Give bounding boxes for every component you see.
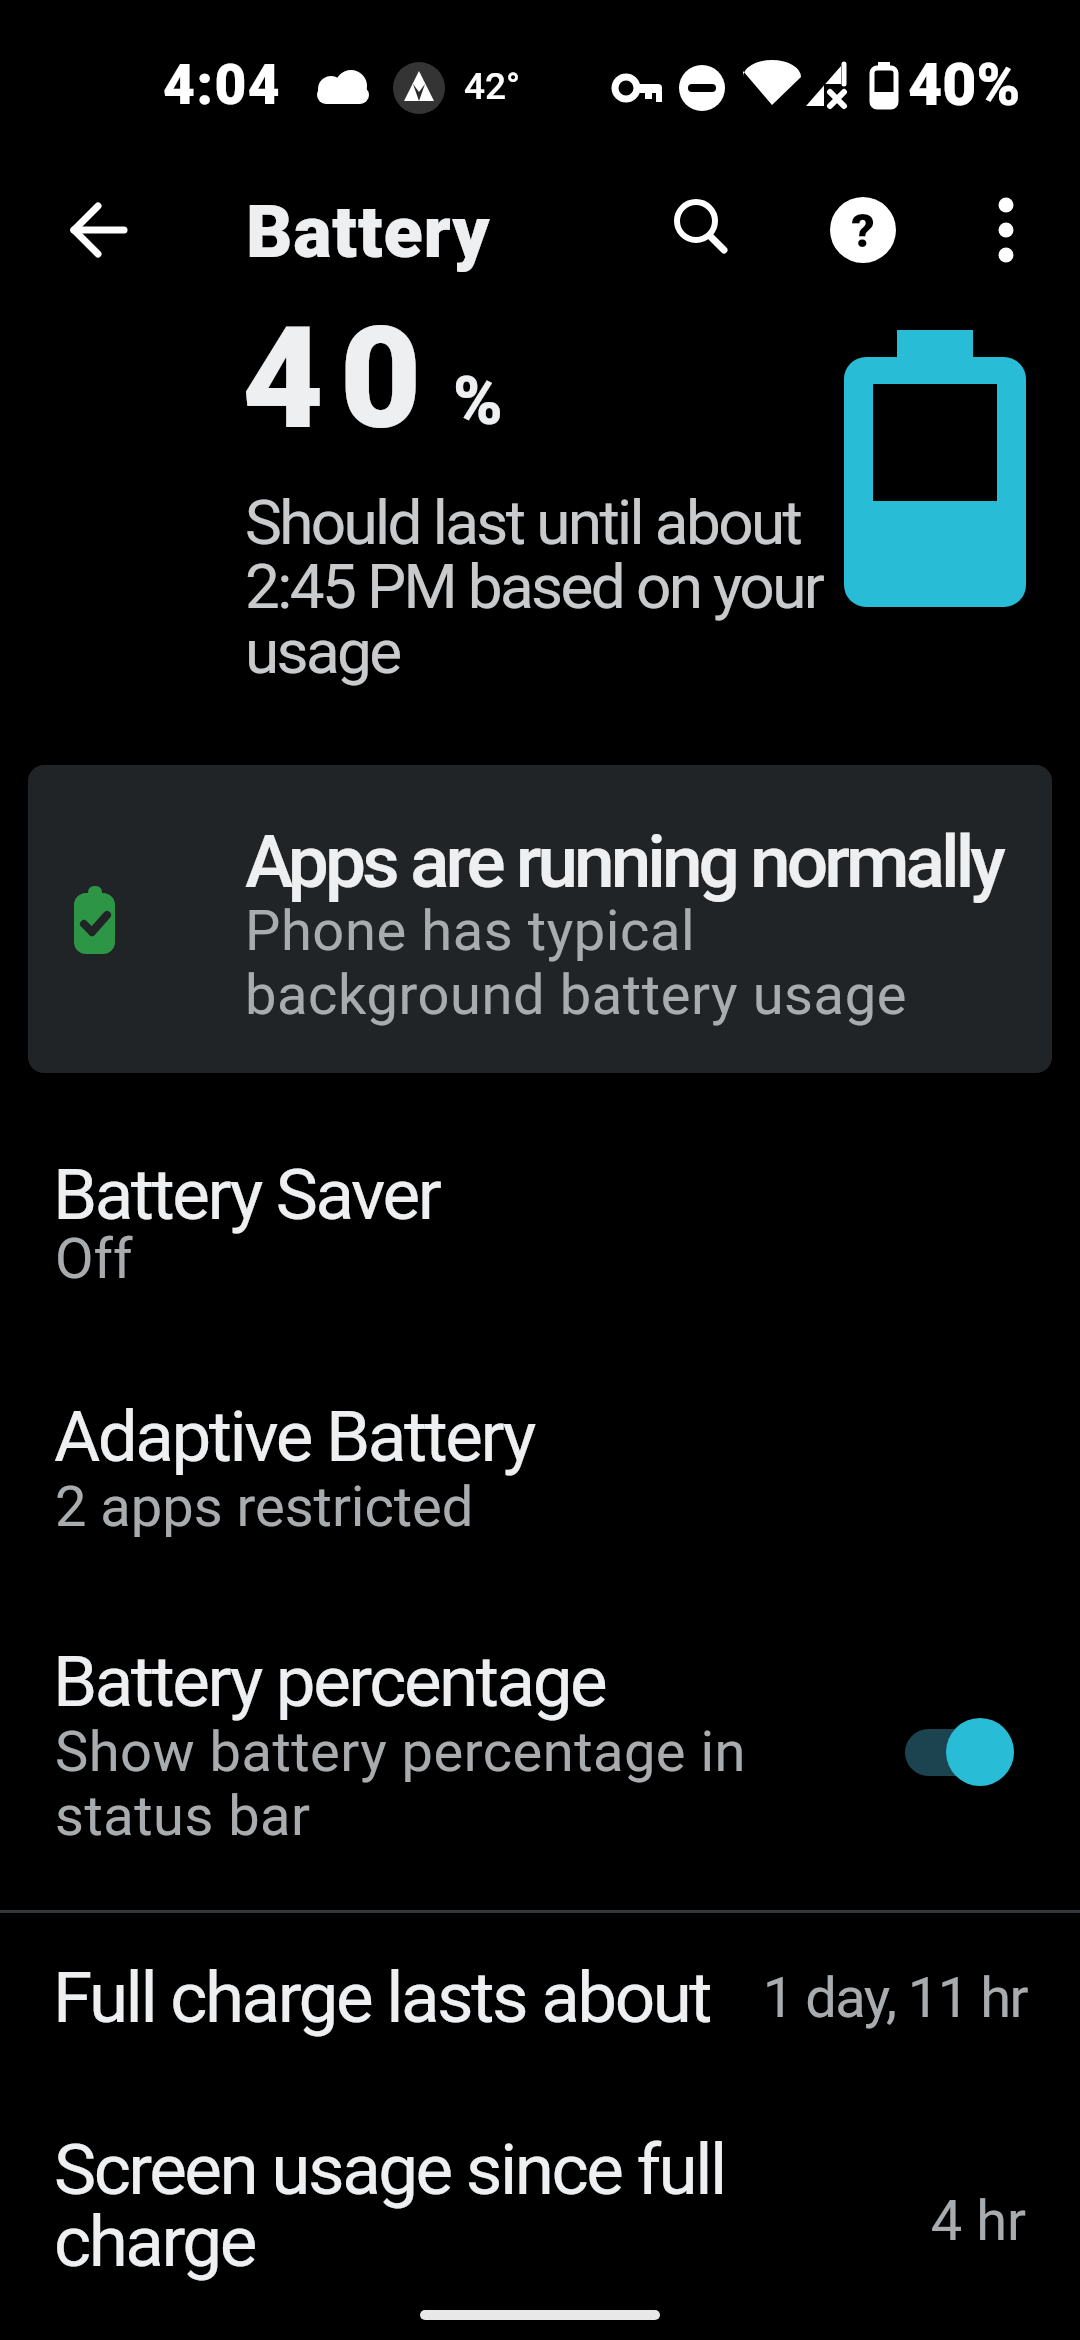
- button[interactable]: [0, 1370, 1080, 1585]
- staticText: Battery Saver: [53, 1153, 440, 1236]
- staticText: Off: [55, 1226, 133, 1292]
- button[interactable]: [823, 190, 903, 270]
- staticText: ?: [833, 204, 893, 258]
- button[interactable]: [966, 190, 1046, 270]
- staticText: Adaptive Battery: [54, 1395, 534, 1478]
- staticText: 2 apps restricted: [55, 1474, 474, 1540]
- staticText: Apps are running normally: [245, 819, 1002, 905]
- staticText: Should last until about 2:45 PM based on…: [245, 486, 823, 689]
- staticText: 4:04: [163, 53, 282, 117]
- staticText: Battery: [246, 190, 491, 274]
- button[interactable]: [0, 2095, 1080, 2320]
- staticText: 4 hr: [0, 2188, 1026, 2254]
- staticText: 1 day, 11 hr: [0, 1965, 1027, 2031]
- button[interactable]: [0, 1615, 1080, 1880]
- staticText: %: [453, 362, 503, 441]
- staticText: Full charge lasts about: [53, 1956, 711, 2039]
- button[interactable]: [28, 765, 1052, 1073]
- button[interactable]: [0, 1125, 1080, 1340]
- button[interactable]: [905, 1729, 1014, 1776]
- staticText: Show battery percentage in status bar: [55, 1719, 746, 1849]
- staticText: 40: [242, 296, 438, 461]
- staticText: 40%: [908, 50, 1021, 119]
- staticText: Phone has typical background battery usa…: [245, 898, 908, 1028]
- staticText: Screen usage since full charge: [54, 2128, 725, 2283]
- button[interactable]: [58, 192, 134, 268]
- button[interactable]: [0, 1925, 1080, 2085]
- staticText: Battery percentage: [53, 1640, 606, 1723]
- staticText: 42°: [464, 65, 521, 108]
- button[interactable]: [660, 190, 740, 270]
